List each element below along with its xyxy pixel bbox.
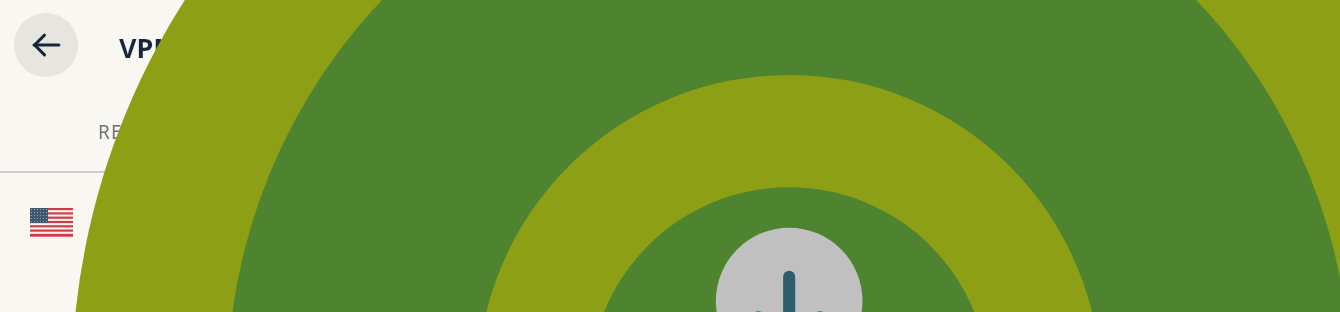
button[interactable]: RECOMMENDED	[80, 92, 276, 171]
staticText: VPN Locations	[119, 29, 313, 66]
button[interactable]: FAVORITES	[298, 92, 478, 171]
staticText: USA - New York	[102, 207, 260, 237]
button[interactable]: Back	[14, 13, 78, 77]
staticText: RECOMMENDED	[98, 119, 258, 145]
button[interactable]: USA - New York	[0, 176, 719, 268]
